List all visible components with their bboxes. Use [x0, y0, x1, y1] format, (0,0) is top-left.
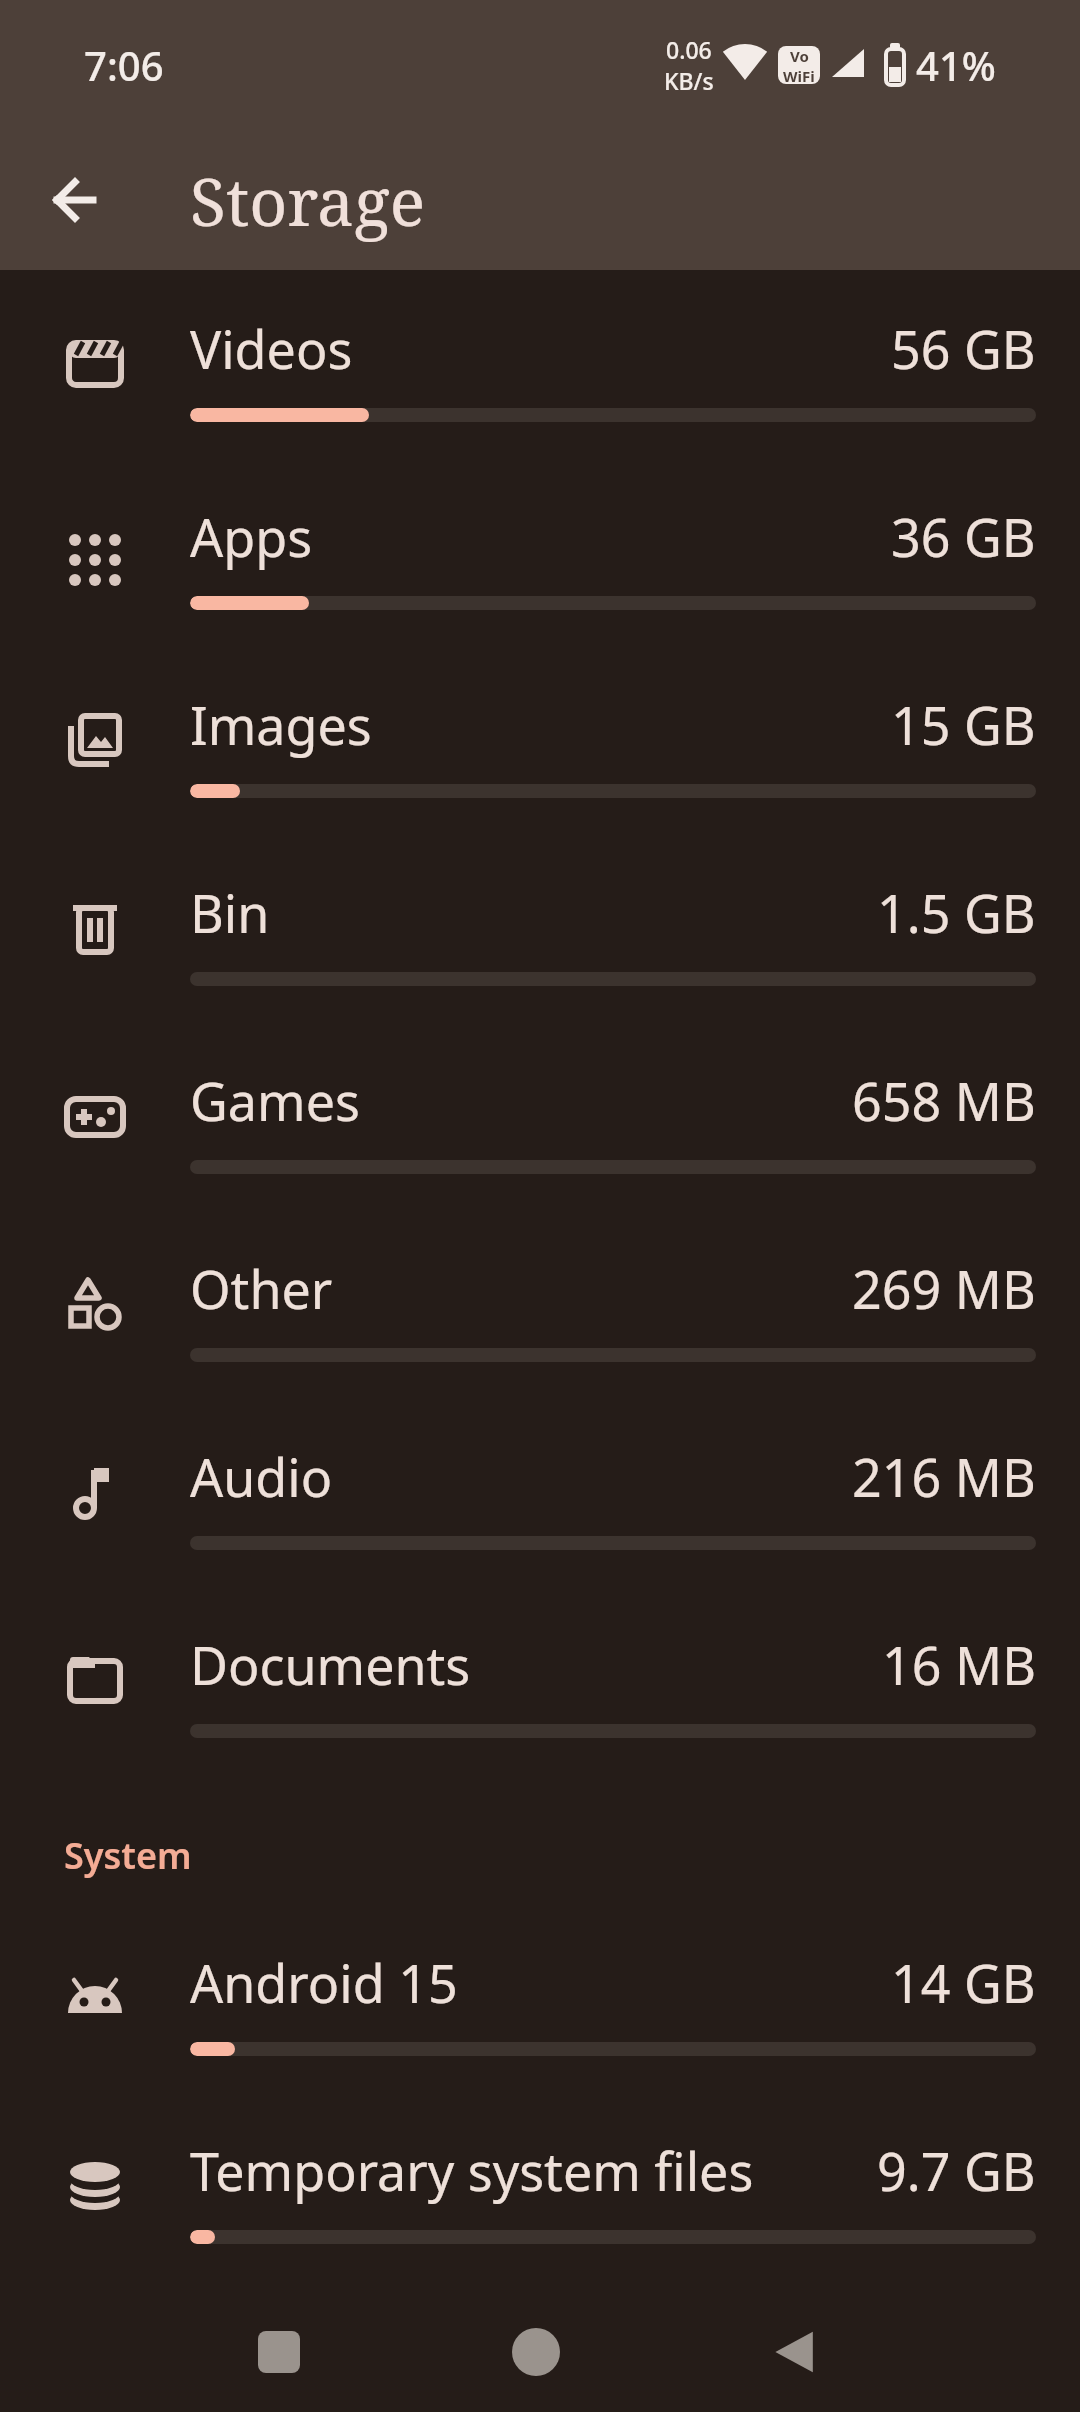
staticText: Documents [190, 1629, 471, 1700]
staticText: 56 GB [891, 313, 1036, 384]
staticText: 9.7 GB [877, 2135, 1036, 2206]
staticText: KB/s [664, 65, 714, 96]
button[interactable] [50, 176, 98, 224]
staticText: Vo [790, 46, 809, 66]
button[interactable]: Apps [0, 470, 1080, 658]
staticText: 36 GB [891, 501, 1036, 572]
staticText: Images [190, 689, 372, 760]
staticText: Other [190, 1253, 333, 1324]
button[interactable] [258, 2331, 300, 2373]
staticText: WiFi [783, 66, 815, 84]
staticText: Storage [190, 155, 425, 245]
staticText: Videos [190, 313, 353, 384]
staticText: 0.06 [666, 34, 712, 65]
staticText: Bin [190, 877, 270, 948]
staticText: Audio [190, 1441, 333, 1512]
staticText: 14 GB [891, 1947, 1036, 2018]
button[interactable]: Temporary system files [0, 2104, 1080, 2292]
button[interactable] [512, 2328, 560, 2376]
button[interactable]: Games [0, 1034, 1080, 1222]
staticText: Games [190, 1065, 360, 1136]
staticText: 15 GB [891, 689, 1036, 760]
button[interactable]: Documents [0, 1598, 1080, 1786]
button[interactable]: Videos [0, 282, 1080, 470]
staticText: 7:06 [84, 38, 164, 92]
staticText: 41% [916, 38, 996, 92]
button[interactable]: Audio [0, 1410, 1080, 1598]
staticText: 658 MB [852, 1065, 1036, 1136]
button[interactable]: Images [0, 658, 1080, 846]
staticText: 1.5 GB [877, 877, 1036, 948]
staticText: Apps [190, 501, 313, 572]
staticText: Temporary system files [190, 2135, 754, 2206]
staticText: 16 MB [882, 1629, 1036, 1700]
staticText: System [64, 1831, 192, 1880]
staticText: 269 MB [852, 1253, 1036, 1324]
button[interactable]: Bin [0, 846, 1080, 1034]
button[interactable]: Other [0, 1222, 1080, 1410]
button[interactable] [771, 2330, 815, 2374]
staticText: Android 15 [190, 1947, 458, 2018]
staticText: 216 MB [852, 1441, 1036, 1512]
button[interactable]: Android 15 [0, 1916, 1080, 2104]
